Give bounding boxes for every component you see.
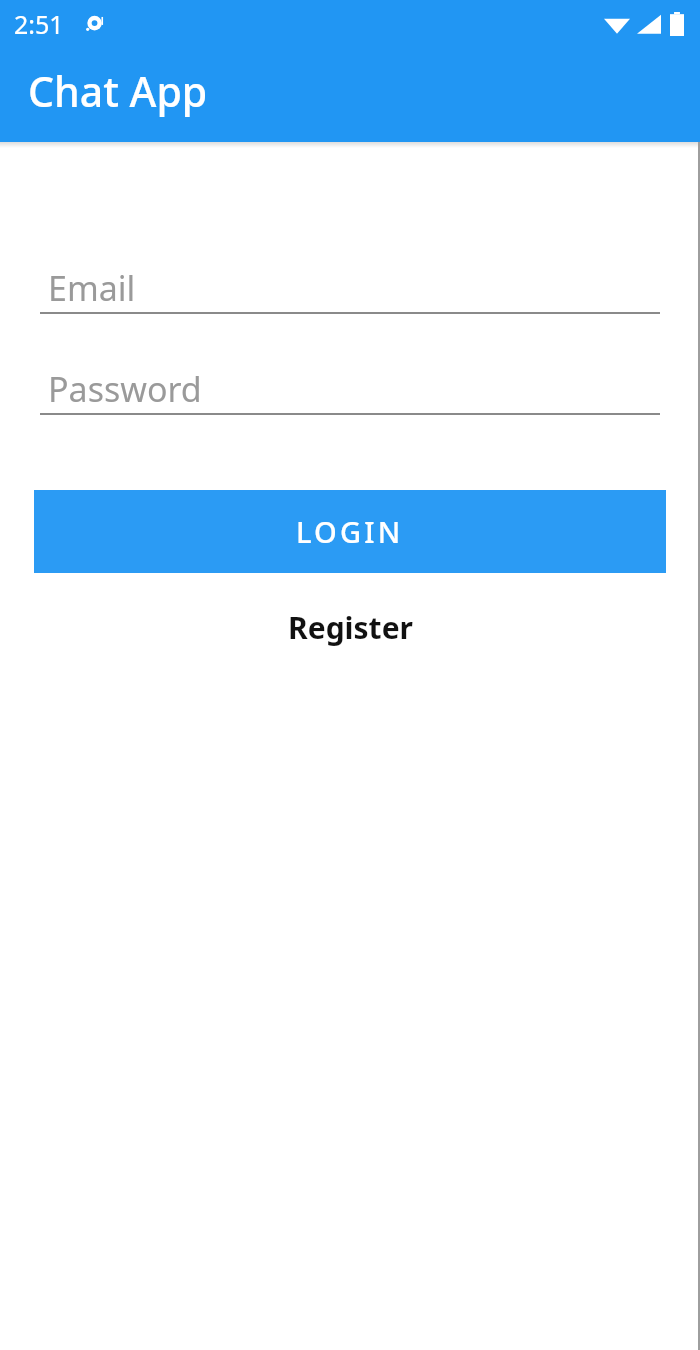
button[interactable]: Password [40,365,660,413]
staticText: Password [48,366,202,412]
staticText: 2:51 [14,7,64,41]
staticText: LOGIN [296,512,404,551]
staticText: Register [288,607,413,648]
button[interactable]: Register [276,601,425,654]
button[interactable]: Email [40,264,660,312]
staticText: Email [48,265,136,311]
button[interactable]: LOGIN [34,490,666,573]
staticText: Chat App [28,63,208,119]
